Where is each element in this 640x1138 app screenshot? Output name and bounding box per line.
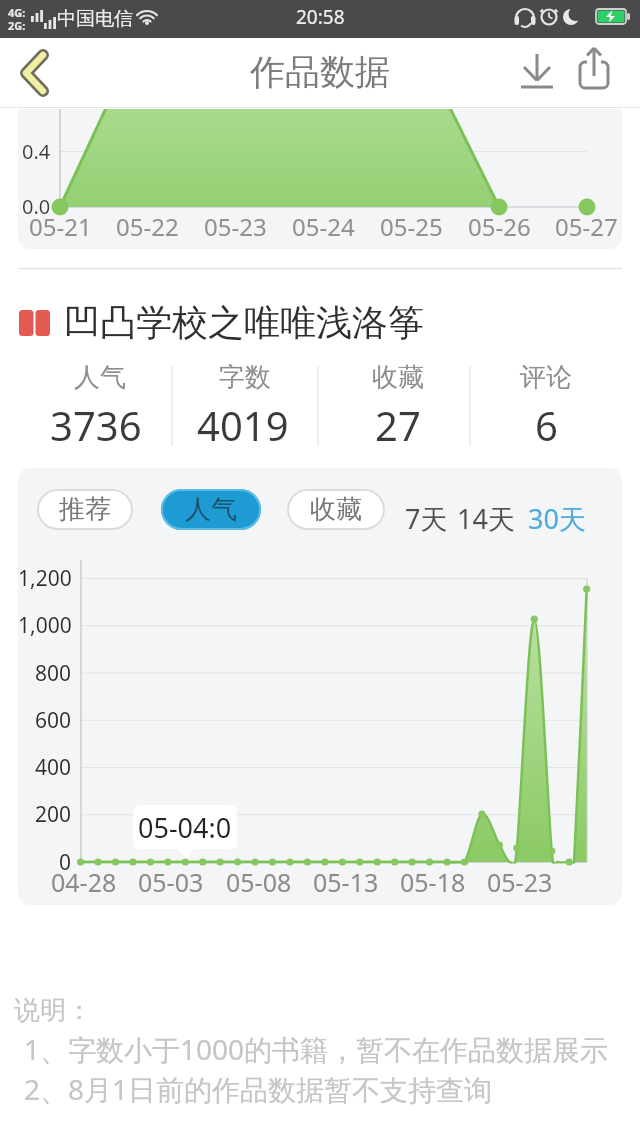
staticText: 400	[35, 753, 72, 782]
staticText: 6	[535, 398, 558, 446]
staticText: 05-25	[380, 210, 443, 243]
staticText: 说明：	[14, 994, 92, 1027]
staticText: 字数	[219, 361, 271, 394]
staticText: 1,000	[18, 611, 72, 640]
staticText: 05-23	[487, 865, 553, 899]
staticText: 中国电信	[57, 7, 133, 31]
button[interactable]: 推荐	[37, 489, 133, 530]
staticText: 05-04:0	[138, 809, 232, 846]
staticText: 30天	[528, 500, 586, 537]
staticText: 7天	[405, 500, 448, 537]
staticText: 05-24	[292, 210, 355, 243]
staticText: 0	[59, 848, 72, 877]
button[interactable]: 30天	[527, 498, 587, 538]
staticText: 作品数据	[250, 50, 390, 94]
staticText: 05-27	[555, 210, 618, 243]
button[interactable]: 7天	[396, 498, 456, 538]
staticText: 04-28	[51, 865, 117, 899]
staticText: 800	[35, 659, 72, 688]
staticText: 05-21	[29, 210, 92, 243]
staticText: 1、字数小于1000的书籍，暂不在作品数据展示	[24, 1030, 609, 1068]
staticText: 凹凸学校之唯唯浅洛筝	[64, 300, 424, 345]
staticText: 05-13	[313, 865, 379, 899]
staticText: 200	[35, 800, 72, 829]
staticText: 3736	[50, 398, 142, 446]
staticText: 推荐	[59, 493, 111, 526]
button[interactable]	[10, 45, 65, 100]
staticText: 1,200	[18, 564, 72, 593]
staticText: 4019	[197, 398, 289, 446]
button[interactable]: 收藏	[287, 489, 385, 530]
staticText: 05-26	[468, 210, 531, 243]
staticText: 05-18	[400, 865, 466, 899]
button[interactable]	[572, 48, 616, 96]
staticText: 人气	[185, 493, 237, 526]
staticText: 评论	[520, 361, 572, 394]
staticText: 600	[35, 706, 72, 735]
staticText: 人气	[74, 361, 126, 394]
button[interactable]: 14天	[456, 498, 516, 538]
staticText: 0.4	[22, 138, 51, 165]
staticText: 27	[375, 398, 421, 446]
staticText: 2、8月1日前的作品数据暂不支持查询	[24, 1070, 493, 1108]
button[interactable]	[515, 48, 559, 96]
staticText: 05-08	[226, 865, 292, 899]
staticText: 05-23	[204, 210, 267, 243]
staticText: 14天	[457, 500, 515, 537]
staticText: 收藏	[310, 493, 362, 526]
staticText: 4G:	[8, 5, 26, 20]
staticText: 2G:	[8, 18, 26, 33]
staticText: 05-22	[116, 210, 179, 243]
staticText: 05-03	[138, 865, 204, 899]
staticText: 0.0	[22, 193, 51, 220]
staticText: 收藏	[372, 361, 424, 394]
button[interactable]: 人气	[161, 489, 261, 530]
staticText: 20:58	[296, 4, 345, 30]
